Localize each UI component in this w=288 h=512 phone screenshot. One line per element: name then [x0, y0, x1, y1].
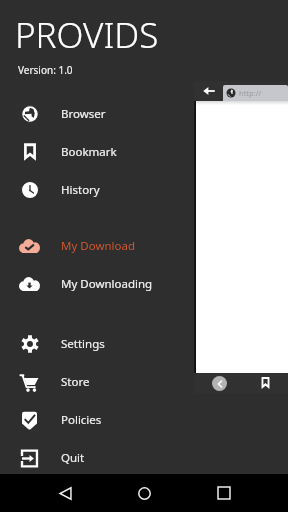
staticText: Quit — [61, 450, 85, 466]
button[interactable]: My Downloading — [0, 265, 288, 303]
button[interactable]: Recent apps — [209, 478, 239, 508]
staticText: http:// — [239, 88, 262, 98]
staticText: Settings — [61, 336, 105, 352]
button[interactable]: Home — [129, 478, 159, 508]
button[interactable]: Back — [208, 373, 230, 393]
button[interactable]: Browser — [0, 95, 288, 133]
staticText: PROVIDS — [15, 11, 159, 59]
staticText: Version: 1.0 — [18, 63, 73, 77]
button[interactable]: Back — [50, 478, 80, 508]
staticText: Browser — [61, 106, 106, 122]
button[interactable]: Quit — [0, 439, 288, 477]
button[interactable]: Back — [200, 81, 217, 101]
button[interactable]: http:// — [223, 85, 288, 101]
button[interactable]: Bookmarks — [254, 373, 276, 393]
staticText: Store — [61, 374, 90, 390]
staticText: My Downloading — [61, 276, 153, 292]
button[interactable]: Store — [0, 363, 288, 401]
button[interactable]: History — [0, 171, 288, 209]
button[interactable]: My Download — [0, 227, 288, 265]
button[interactable]: Bookmark — [0, 133, 288, 171]
staticText: History — [61, 182, 100, 198]
staticText: Bookmark — [61, 144, 117, 160]
button[interactable]: Settings — [0, 325, 288, 363]
button[interactable]: Policies — [0, 401, 288, 439]
staticText: Policies — [61, 412, 102, 428]
staticText: My Download — [61, 238, 136, 254]
